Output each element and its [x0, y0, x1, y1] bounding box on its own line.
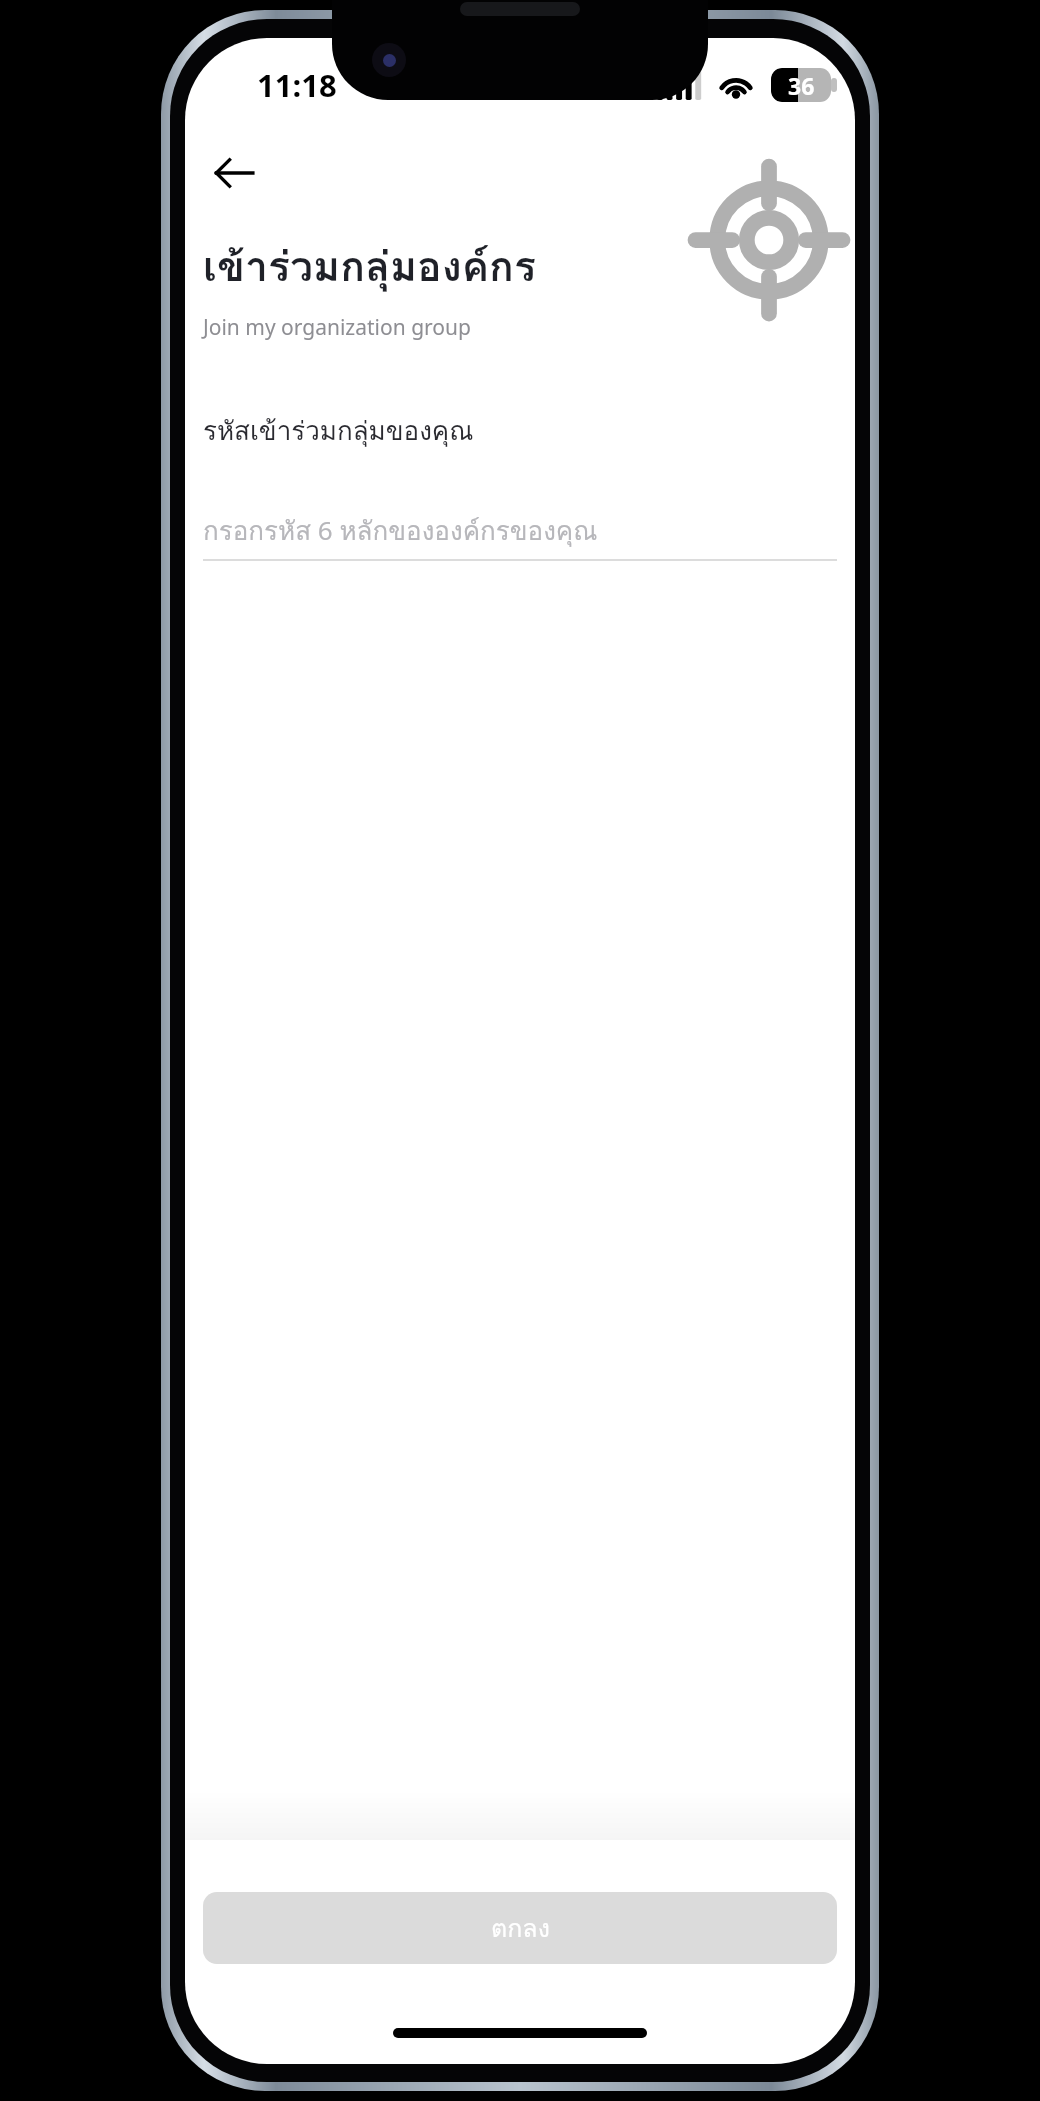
staticText: 36 — [788, 70, 815, 101]
button[interactable]: กรอกรหัส 6 หลักขององค์กรของคุณ — [203, 501, 837, 559]
staticText: ตกลง — [491, 1908, 550, 1948]
staticText: 11:18 — [257, 64, 337, 106]
staticText: เข้าร่วมกลุ่มองค์กร — [203, 234, 536, 299]
button[interactable]: Target — [689, 160, 849, 320]
button[interactable]: ตกลง — [203, 1892, 837, 1964]
staticText: กรอกรหัส 6 หลักขององค์กรของคุณ — [203, 510, 598, 551]
button[interactable]: Back — [203, 142, 265, 204]
staticText: รหัสเข้าร่วมกลุ่มของคุณ — [203, 410, 474, 451]
staticText: Join my organization group — [203, 313, 471, 342]
